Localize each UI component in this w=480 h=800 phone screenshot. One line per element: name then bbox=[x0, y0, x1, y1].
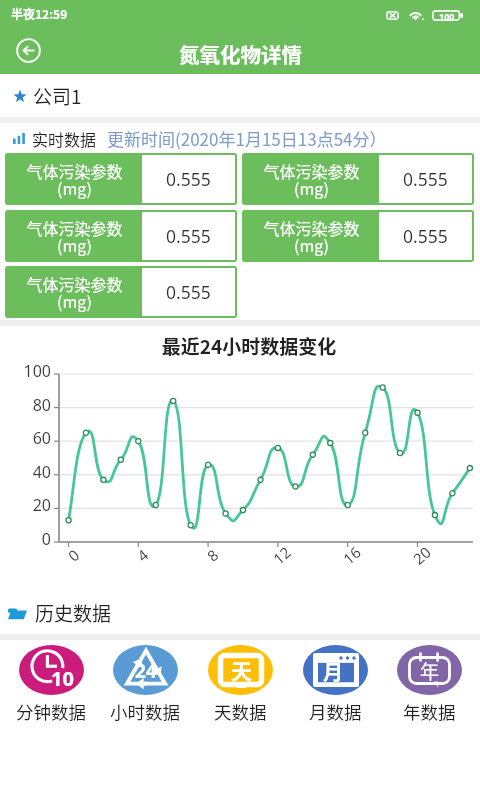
button[interactable]: 年 bbox=[385, 645, 473, 724]
staticText: 4 bbox=[133, 544, 152, 565]
staticText: 8 bbox=[203, 544, 222, 565]
staticText: 0.555 bbox=[403, 167, 448, 191]
staticText: 100 bbox=[0, 360, 51, 380]
staticText: 100 bbox=[439, 10, 455, 21]
staticText: 0.555 bbox=[166, 167, 211, 191]
staticText: 气体污染参数 (mg) bbox=[26, 159, 123, 200]
staticText: 气体污染参数 (mg) bbox=[263, 216, 360, 257]
staticText: 年数据 bbox=[403, 699, 456, 724]
button[interactable]: 24 bbox=[101, 645, 189, 724]
staticText: 月 bbox=[323, 657, 343, 686]
staticText: 天 bbox=[231, 655, 252, 685]
staticText: 20 bbox=[0, 494, 51, 514]
staticText: 更新时间(2020年1月15日13点54分） bbox=[107, 126, 387, 151]
staticText: 24 bbox=[135, 658, 157, 684]
staticText: 历史数据 bbox=[35, 599, 112, 627]
button[interactable]: 返回 bbox=[8, 30, 48, 70]
staticText: 0.555 bbox=[166, 224, 211, 248]
button[interactable]: 气体污染参数 (mg) bbox=[242, 210, 474, 262]
staticText: 0.555 bbox=[403, 224, 448, 248]
button[interactable]: 气体污染参数 (mg) bbox=[5, 266, 237, 318]
staticText: 40 bbox=[0, 461, 51, 481]
staticText: 半夜12:59 bbox=[11, 5, 68, 22]
staticText: 气体污染参数 (mg) bbox=[263, 159, 360, 200]
staticText: 气体污染参数 (mg) bbox=[26, 272, 123, 313]
staticText: 80 bbox=[0, 394, 51, 414]
button[interactable]: 月 bbox=[291, 645, 379, 724]
staticText: 氮氧化物详情 bbox=[179, 39, 302, 69]
staticText: 月数据 bbox=[309, 699, 362, 724]
button[interactable]: 气体污染参数 (mg) bbox=[242, 153, 474, 205]
staticText: 气体污染参数 (mg) bbox=[26, 216, 123, 257]
button[interactable]: 气体污染参数 (mg) bbox=[5, 153, 237, 205]
staticText: 10 bbox=[51, 665, 74, 692]
staticText: 20 bbox=[409, 542, 435, 568]
button[interactable]: 10 bbox=[7, 645, 95, 724]
button[interactable]: 天 bbox=[196, 645, 284, 724]
staticText: 天数据 bbox=[214, 699, 267, 724]
staticText: 分钟数据 bbox=[16, 699, 86, 724]
staticText: 0 bbox=[0, 528, 51, 548]
staticText: 0 bbox=[64, 544, 83, 565]
staticText: 年 bbox=[420, 657, 440, 685]
button[interactable]: 气体污染参数 (mg) bbox=[5, 210, 237, 262]
staticText: 16 bbox=[339, 542, 365, 568]
staticText: 12 bbox=[269, 542, 295, 568]
staticText: 小时数据 bbox=[110, 699, 180, 724]
staticText: 60 bbox=[0, 427, 51, 447]
button[interactable]: 公司1 bbox=[0, 74, 480, 117]
staticText: 最近24小时数据变化 bbox=[9, 332, 480, 360]
staticText: 实时数据 bbox=[32, 127, 97, 150]
staticText: 0.555 bbox=[166, 280, 211, 304]
staticText: 公司1 bbox=[33, 82, 82, 110]
